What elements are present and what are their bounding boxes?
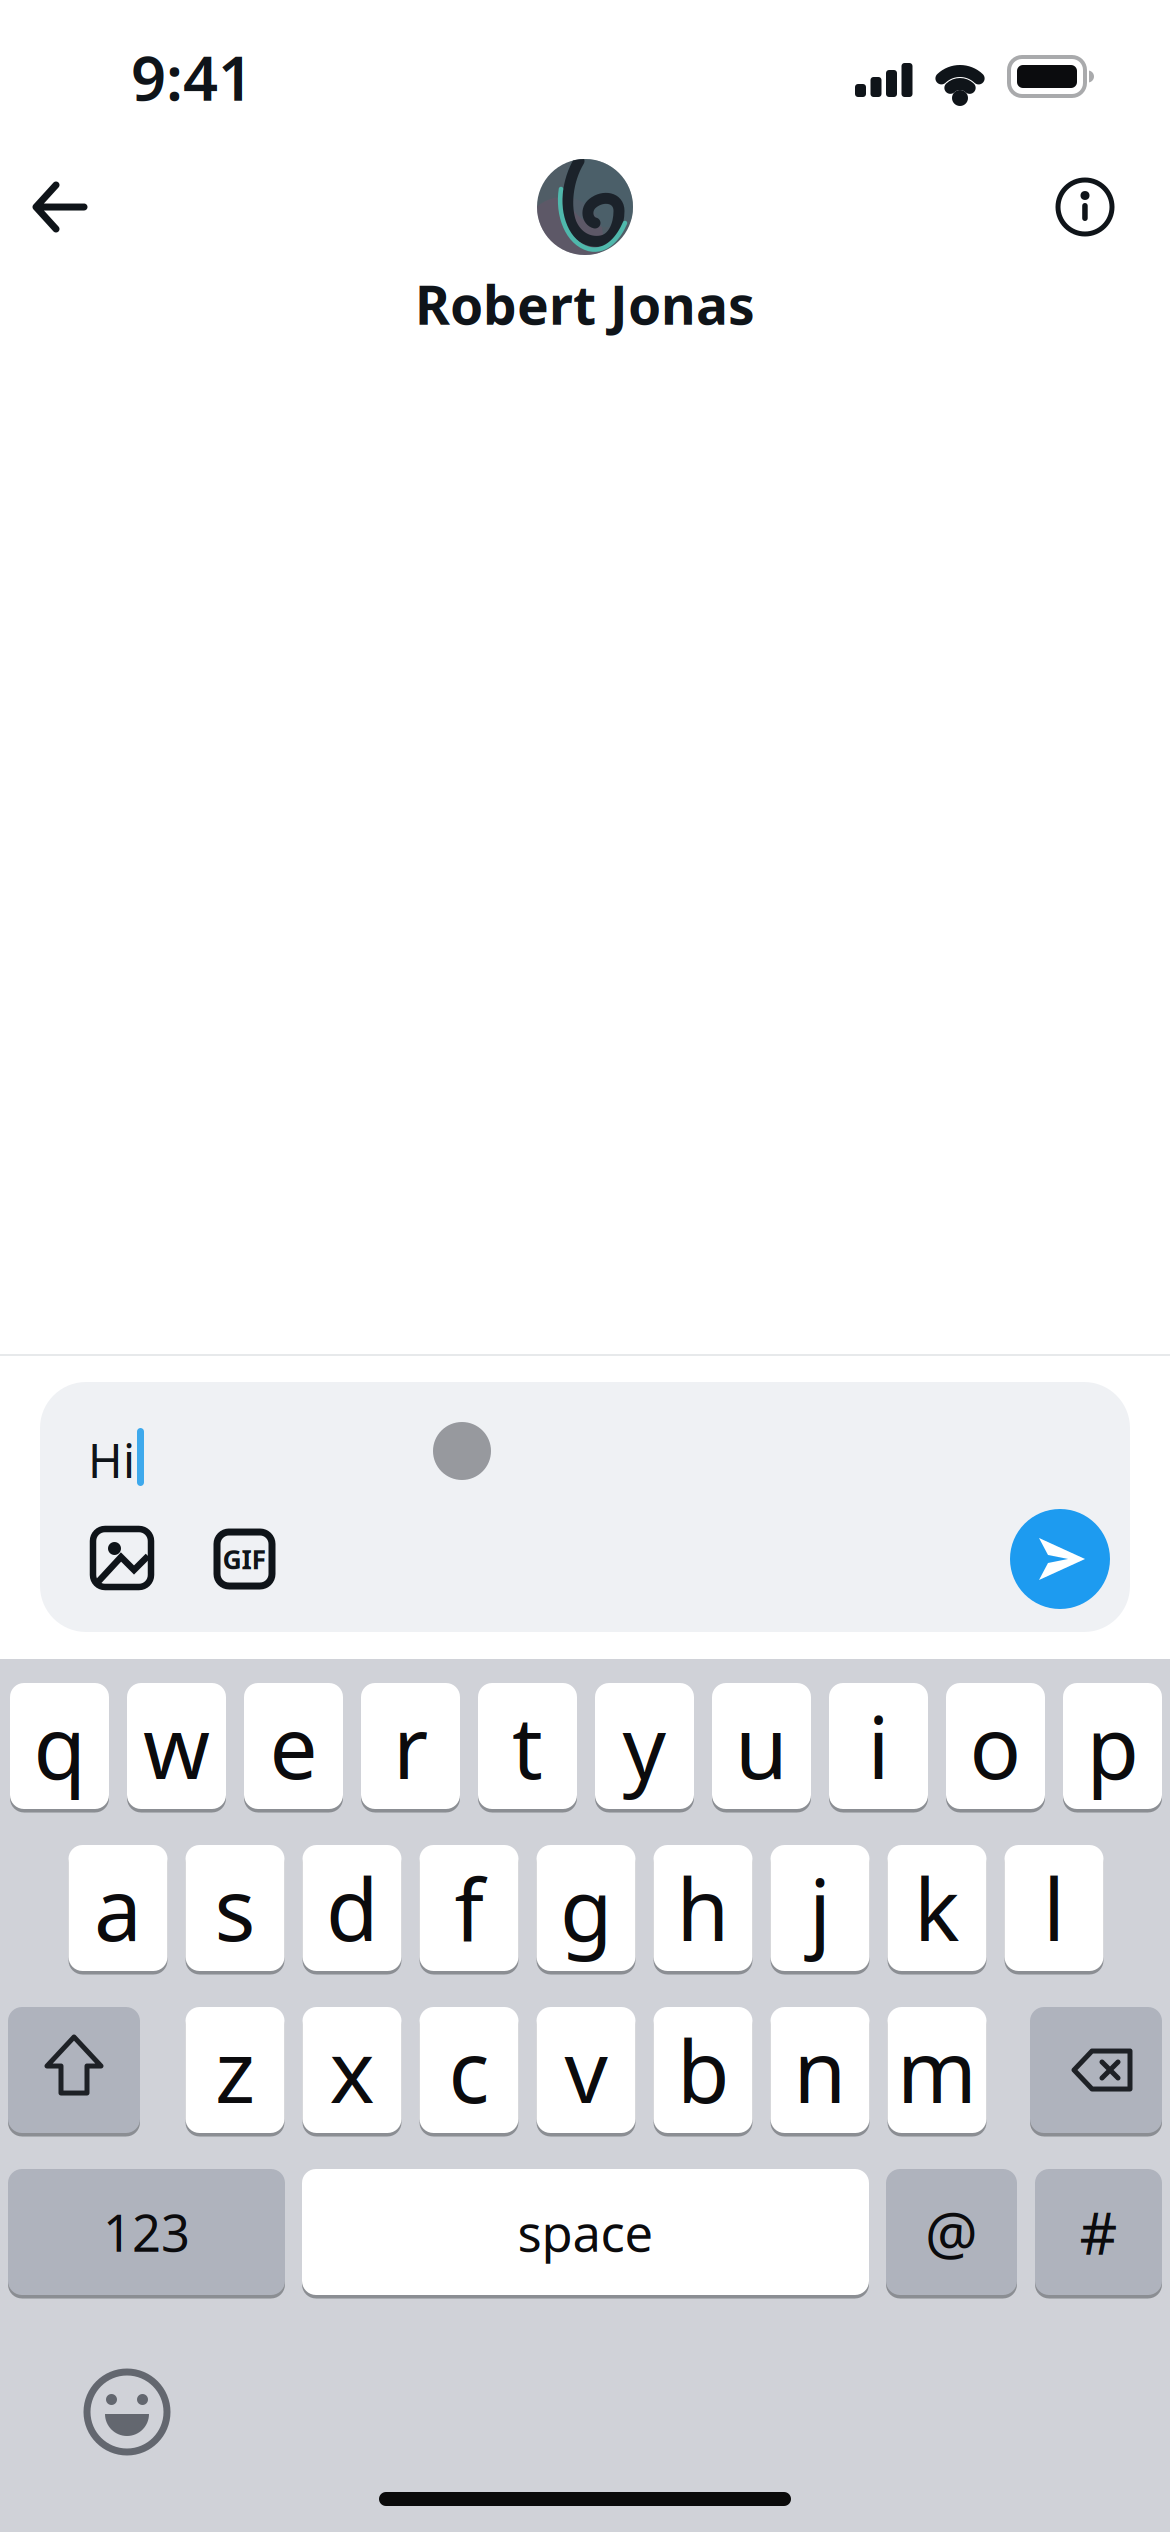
button[interactable]: GIF: [208, 1521, 284, 1597]
staticText: r: [393, 1689, 428, 1803]
staticText: 123: [103, 2198, 190, 2266]
button[interactable]: @: [886, 2169, 1017, 2298]
button[interactable]: s: [185, 1845, 284, 1974]
button[interactable]: k: [887, 1845, 986, 1974]
button[interactable]: c: [419, 2007, 518, 2136]
staticText: o: [969, 1689, 1021, 1803]
staticText: v: [564, 2013, 607, 2127]
button[interactable]: g: [536, 1845, 635, 1974]
staticText: 9:41: [131, 36, 253, 118]
button[interactable]: v: [536, 2007, 635, 2136]
staticText: a: [94, 1851, 142, 1965]
staticText: q: [33, 1689, 85, 1803]
staticText: Hi: [88, 1429, 135, 1491]
button[interactable]: o: [946, 1683, 1045, 1812]
button[interactable]: e: [244, 1683, 343, 1812]
staticText: y: [622, 1689, 666, 1803]
staticText: e: [269, 1689, 317, 1803]
staticText: f: [454, 1851, 483, 1965]
staticText: i: [867, 1689, 889, 1803]
button[interactable]: x: [302, 2007, 401, 2136]
button[interactable]: z: [185, 2007, 284, 2136]
staticText: l: [1043, 1851, 1065, 1965]
button[interactable]: a: [68, 1845, 167, 1974]
staticText: #: [1079, 2193, 1117, 2271]
button[interactable]: m: [887, 2007, 986, 2136]
button[interactable]: [1010, 1509, 1110, 1609]
button[interactable]: n: [770, 2007, 869, 2136]
button[interactable]: q: [10, 1683, 109, 1812]
staticText: w: [143, 1689, 210, 1803]
staticText: c: [448, 2013, 489, 2127]
staticText: s: [214, 1851, 255, 1965]
button[interactable]: 123: [8, 2169, 285, 2298]
button[interactable]: h: [653, 1845, 752, 1974]
staticText: z: [215, 2013, 255, 2127]
staticText: h: [676, 1851, 729, 1965]
staticText: space: [517, 2198, 653, 2266]
staticText: b: [677, 2013, 729, 2127]
button[interactable]: b: [653, 2007, 752, 2136]
staticText: m: [897, 2013, 977, 2127]
button[interactable]: [77, 2362, 177, 2462]
button[interactable]: [1050, 172, 1120, 242]
button[interactable]: [537, 159, 633, 255]
staticText: g: [560, 1851, 612, 1965]
button[interactable]: f: [419, 1845, 518, 1974]
staticText: t: [512, 1689, 543, 1803]
staticText: n: [793, 2013, 846, 2127]
button[interactable]: p: [1063, 1683, 1162, 1812]
staticText: j: [809, 1851, 831, 1965]
staticText: GIF: [222, 1541, 266, 1577]
staticText: p: [1086, 1689, 1138, 1803]
button[interactable]: [84, 1520, 160, 1596]
button[interactable]: space: [302, 2169, 869, 2298]
button[interactable]: d: [302, 1845, 401, 1974]
button[interactable]: y: [595, 1683, 694, 1812]
button[interactable]: t: [478, 1683, 577, 1812]
button[interactable]: [26, 172, 96, 242]
button[interactable]: l: [1004, 1845, 1103, 1974]
button[interactable]: [8, 2007, 140, 2136]
button[interactable]: i: [829, 1683, 928, 1812]
button[interactable]: u: [712, 1683, 811, 1812]
button[interactable]: #: [1035, 2169, 1162, 2298]
staticText: x: [329, 2013, 374, 2127]
staticText: u: [735, 1689, 788, 1803]
button[interactable]: r: [361, 1683, 460, 1812]
button[interactable]: w: [127, 1683, 226, 1812]
button[interactable]: [1030, 2007, 1162, 2136]
button[interactable]: j: [770, 1845, 869, 1974]
staticText: d: [326, 1851, 378, 1965]
staticText: k: [914, 1851, 960, 1965]
staticText: @: [925, 2193, 978, 2271]
staticText: Robert Jonas: [415, 269, 755, 339]
